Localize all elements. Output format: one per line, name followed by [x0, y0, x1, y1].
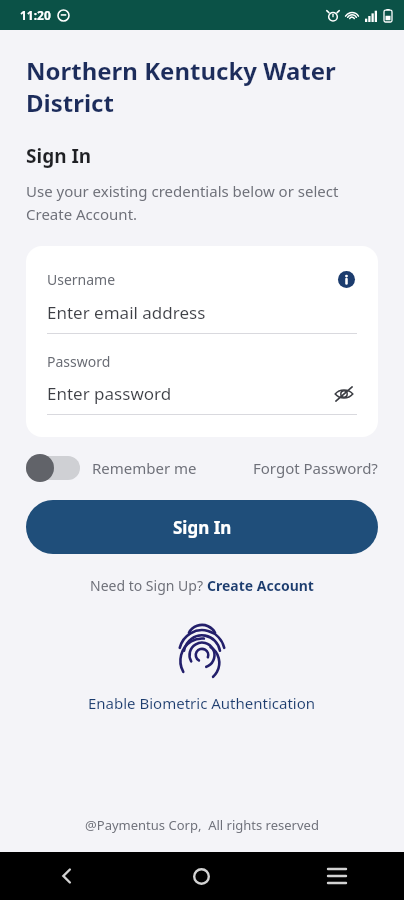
staticText: Enable Biometric Authentication	[88, 693, 316, 713]
staticText: Enter email address	[47, 301, 206, 324]
staticText: @Paymentus Corp, All rights reserved	[0, 816, 404, 834]
staticText: Create Account	[207, 576, 314, 595]
button[interactable]: Enter password	[47, 382, 357, 415]
button[interactable]: Back	[0, 852, 134, 900]
button[interactable]: Enter email address	[47, 301, 357, 334]
staticText: Use your existing credentials below or s…	[26, 181, 378, 224]
staticText: Remember me	[92, 458, 197, 478]
staticText: Password	[47, 352, 111, 371]
staticText: 11:20	[20, 7, 51, 23]
button[interactable]: Remember me	[26, 454, 197, 482]
button[interactable]: Recent apps	[269, 852, 404, 900]
staticText: Sign In	[173, 516, 232, 539]
staticText: Need to Sign Up?	[90, 576, 207, 595]
button[interactable]: Sign In	[26, 500, 378, 554]
staticText: Username	[47, 270, 116, 289]
button[interactable]: Show password	[331, 381, 357, 407]
button[interactable]: Enable Biometric Authentication	[0, 627, 404, 713]
staticText: Forgot Password?	[253, 458, 378, 478]
staticText: Enter password	[47, 382, 172, 405]
button[interactable]: Home	[134, 852, 269, 900]
button[interactable]: Create Account	[207, 576, 314, 595]
staticText: Sign In	[26, 143, 92, 169]
button[interactable]: Forgot Password?	[253, 458, 378, 478]
button[interactable]: Username information	[335, 268, 357, 290]
staticText: Northern Kentucky Water District	[26, 54, 378, 119]
